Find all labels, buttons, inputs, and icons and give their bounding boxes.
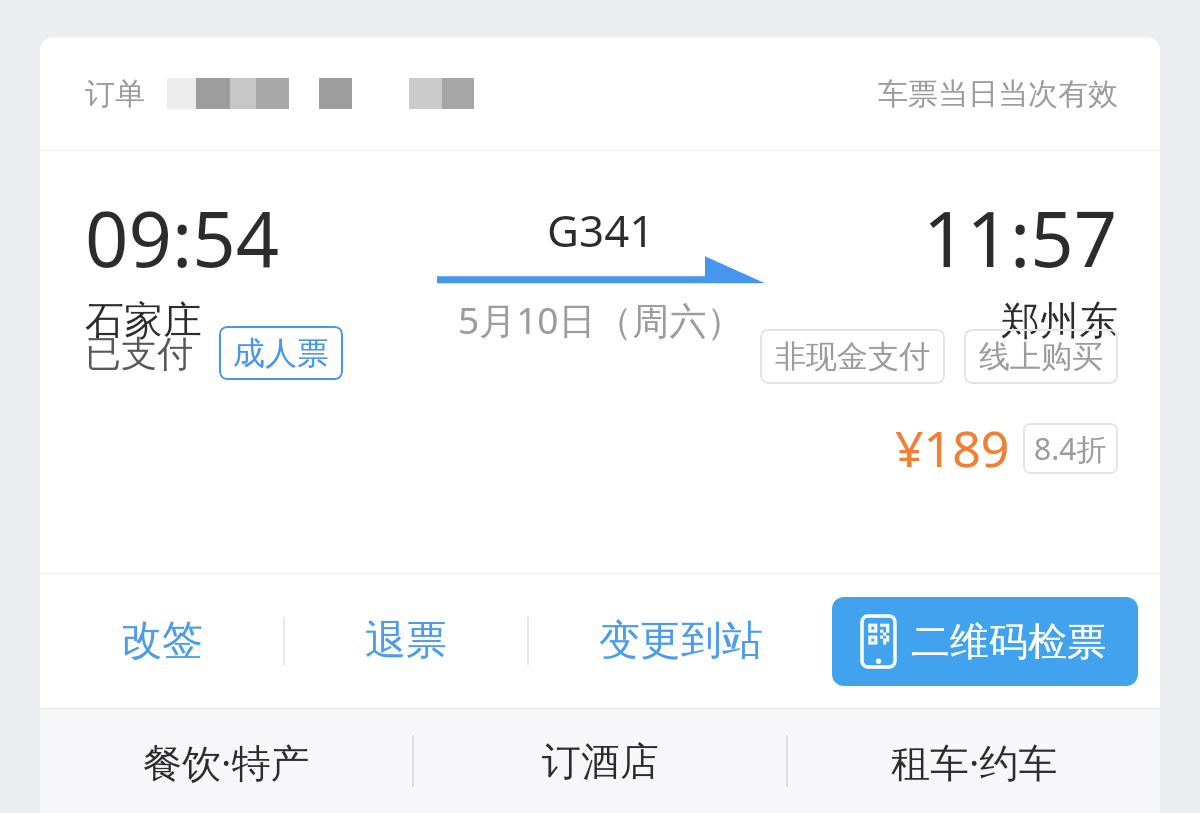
staticText: 8.4折 xyxy=(1034,428,1107,469)
button[interactable]: 订酒店 xyxy=(414,709,786,813)
staticText: ¥189 xyxy=(895,414,1010,482)
staticText: 非现金支付 xyxy=(775,337,930,376)
staticText: 餐饮·特产 xyxy=(143,735,310,788)
button[interactable]: 租车·约车 xyxy=(788,709,1160,813)
staticText: 成人票 xyxy=(233,333,329,373)
staticText: 订单 xyxy=(85,75,145,113)
staticText: 5月10日（周六） xyxy=(458,294,744,345)
staticText: 11:57 xyxy=(923,186,1118,290)
other: QR code ticket check xyxy=(862,616,895,667)
button[interactable]: 非现金支付 xyxy=(760,329,945,384)
staticText: 车票当日当次有效 xyxy=(878,75,1118,113)
staticText: 石家庄 xyxy=(85,296,202,345)
staticText: 变更到站 xyxy=(599,615,763,667)
staticText: 改签 xyxy=(121,615,203,667)
staticText: 租车·约车 xyxy=(891,735,1058,788)
staticText: 退票 xyxy=(365,615,447,667)
staticText: 09:54 xyxy=(85,186,280,290)
button[interactable]: 线上购买 xyxy=(964,329,1118,384)
staticText: 二维码检票 xyxy=(911,617,1106,666)
button[interactable]: 餐饮·特产 xyxy=(40,709,412,813)
button[interactable]: 改签 xyxy=(40,574,283,708)
staticText: 已支付 xyxy=(85,331,193,376)
button[interactable]: QR code ticket check xyxy=(832,597,1138,686)
button[interactable]: 变更到站 xyxy=(529,574,832,708)
staticText: 线上购买 xyxy=(979,337,1103,376)
staticText: G341 xyxy=(547,200,655,260)
staticText: 郑州东 xyxy=(1001,296,1118,345)
button[interactable]: 成人票 xyxy=(219,326,343,380)
button[interactable]: 退票 xyxy=(285,574,527,708)
staticText: 订酒店 xyxy=(542,737,659,786)
